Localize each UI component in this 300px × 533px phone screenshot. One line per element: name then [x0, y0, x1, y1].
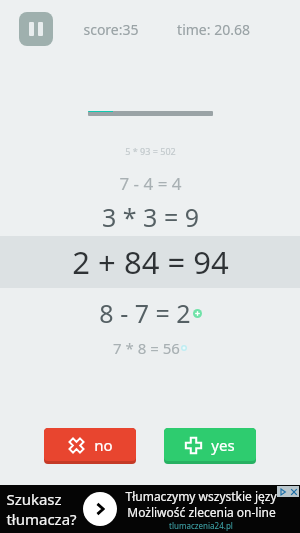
staticText: tlumaczenia24.pl: [169, 520, 233, 531]
staticText: 7 * 8 = 56: [113, 338, 180, 358]
button[interactable]: yes: [164, 428, 256, 464]
staticText: tłumacza?: [6, 509, 77, 529]
staticText: 2 + 84 = 94: [72, 241, 229, 283]
staticText: 3 * 3 = 9: [102, 200, 199, 234]
staticText: yes: [211, 435, 235, 455]
staticText: Szukasz: [6, 489, 62, 509]
button[interactable]: Szukasz: [0, 485, 300, 533]
staticText: Tłumaczymy wszystkie języ: [125, 488, 277, 504]
button[interactable]: 2 + 84 = 94: [0, 236, 300, 288]
button[interactable]: no: [44, 428, 136, 464]
staticText: 8 - 7 = 2: [99, 296, 191, 330]
button[interactable]: Pause: [19, 12, 53, 46]
staticText: time: 20.68: [177, 20, 250, 39]
staticText: 5 * 93 = 502: [125, 145, 176, 157]
staticText: score:35: [83, 20, 139, 39]
staticText: Możliwość zlecenia on-line: [127, 504, 276, 520]
staticText: no: [94, 435, 113, 455]
staticText: 7 - 4 = 4: [119, 172, 182, 195]
